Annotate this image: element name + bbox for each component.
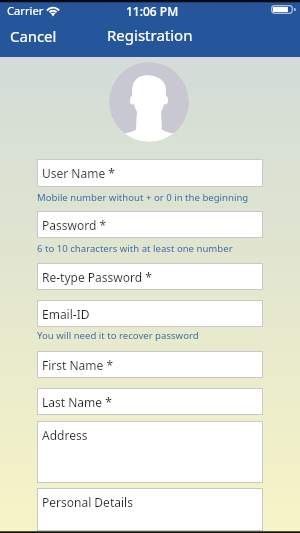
staticText: Carrier bbox=[7, 3, 44, 18]
button[interactable]: Cancel bbox=[2, 22, 65, 50]
button[interactable]: Personal Details bbox=[37, 488, 263, 531]
staticText: Password * bbox=[42, 217, 107, 233]
staticText: Last Name * bbox=[42, 394, 112, 410]
other: Wi-Fi signal bbox=[47, 6, 59, 15]
staticText: Re-type Password * bbox=[42, 269, 152, 285]
staticText: First Name * bbox=[42, 357, 114, 373]
button[interactable]: Address bbox=[37, 421, 263, 483]
staticText: Cancel bbox=[10, 26, 57, 46]
button[interactable]: Email-ID bbox=[37, 300, 263, 327]
button[interactable]: User Name * bbox=[37, 159, 263, 187]
button[interactable]: Password * bbox=[37, 211, 263, 238]
staticText: Email-ID bbox=[42, 306, 90, 322]
other: Battery bbox=[271, 5, 296, 14]
staticText: 11:06 PM bbox=[126, 3, 179, 19]
button[interactable]: Profile photo bbox=[109, 62, 189, 142]
staticText: 6 to 10 characters with at least one num… bbox=[37, 242, 233, 255]
button[interactable]: First Name * bbox=[37, 351, 263, 378]
button[interactable]: Last Name * bbox=[37, 388, 263, 415]
staticText: Address bbox=[42, 427, 88, 443]
button[interactable]: Re-type Password * bbox=[37, 263, 263, 290]
staticText: Personal Details bbox=[42, 494, 133, 510]
staticText: Registration bbox=[107, 25, 193, 45]
staticText: You will need it to recover password bbox=[37, 329, 199, 342]
staticText: Mobile number without + or 0 in the begi… bbox=[37, 191, 249, 204]
staticText: User Name * bbox=[42, 165, 115, 181]
